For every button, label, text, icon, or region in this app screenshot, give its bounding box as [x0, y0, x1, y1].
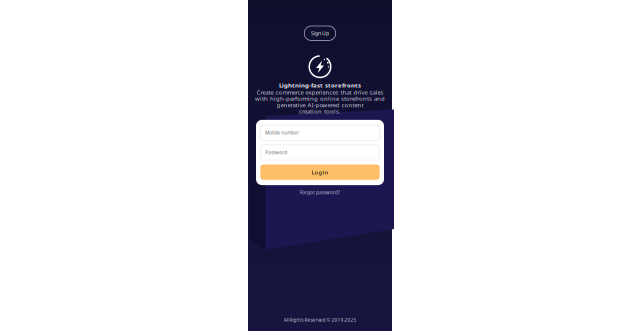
staticText: with high-performing online storefronts … [255, 95, 385, 103]
button[interactable]: Login [260, 164, 380, 180]
staticText: generative AI-powered content [276, 101, 363, 109]
staticText: Mobile number [265, 130, 299, 136]
staticText: Forgot password? [300, 189, 340, 195]
staticText: Sign Up [311, 30, 329, 37]
staticText: Lightning-fast storefronts [279, 81, 361, 89]
staticText: creation tools. [299, 107, 341, 115]
staticText: Login [311, 168, 328, 176]
button[interactable]: Forgot password? [300, 189, 340, 195]
staticText: All Rights Reserved © 2019-2025 [283, 317, 356, 323]
staticText: Password [265, 149, 287, 156]
staticText: Create commerce experiences that drive s… [256, 88, 383, 96]
button[interactable]: Sign Up [304, 26, 336, 40]
